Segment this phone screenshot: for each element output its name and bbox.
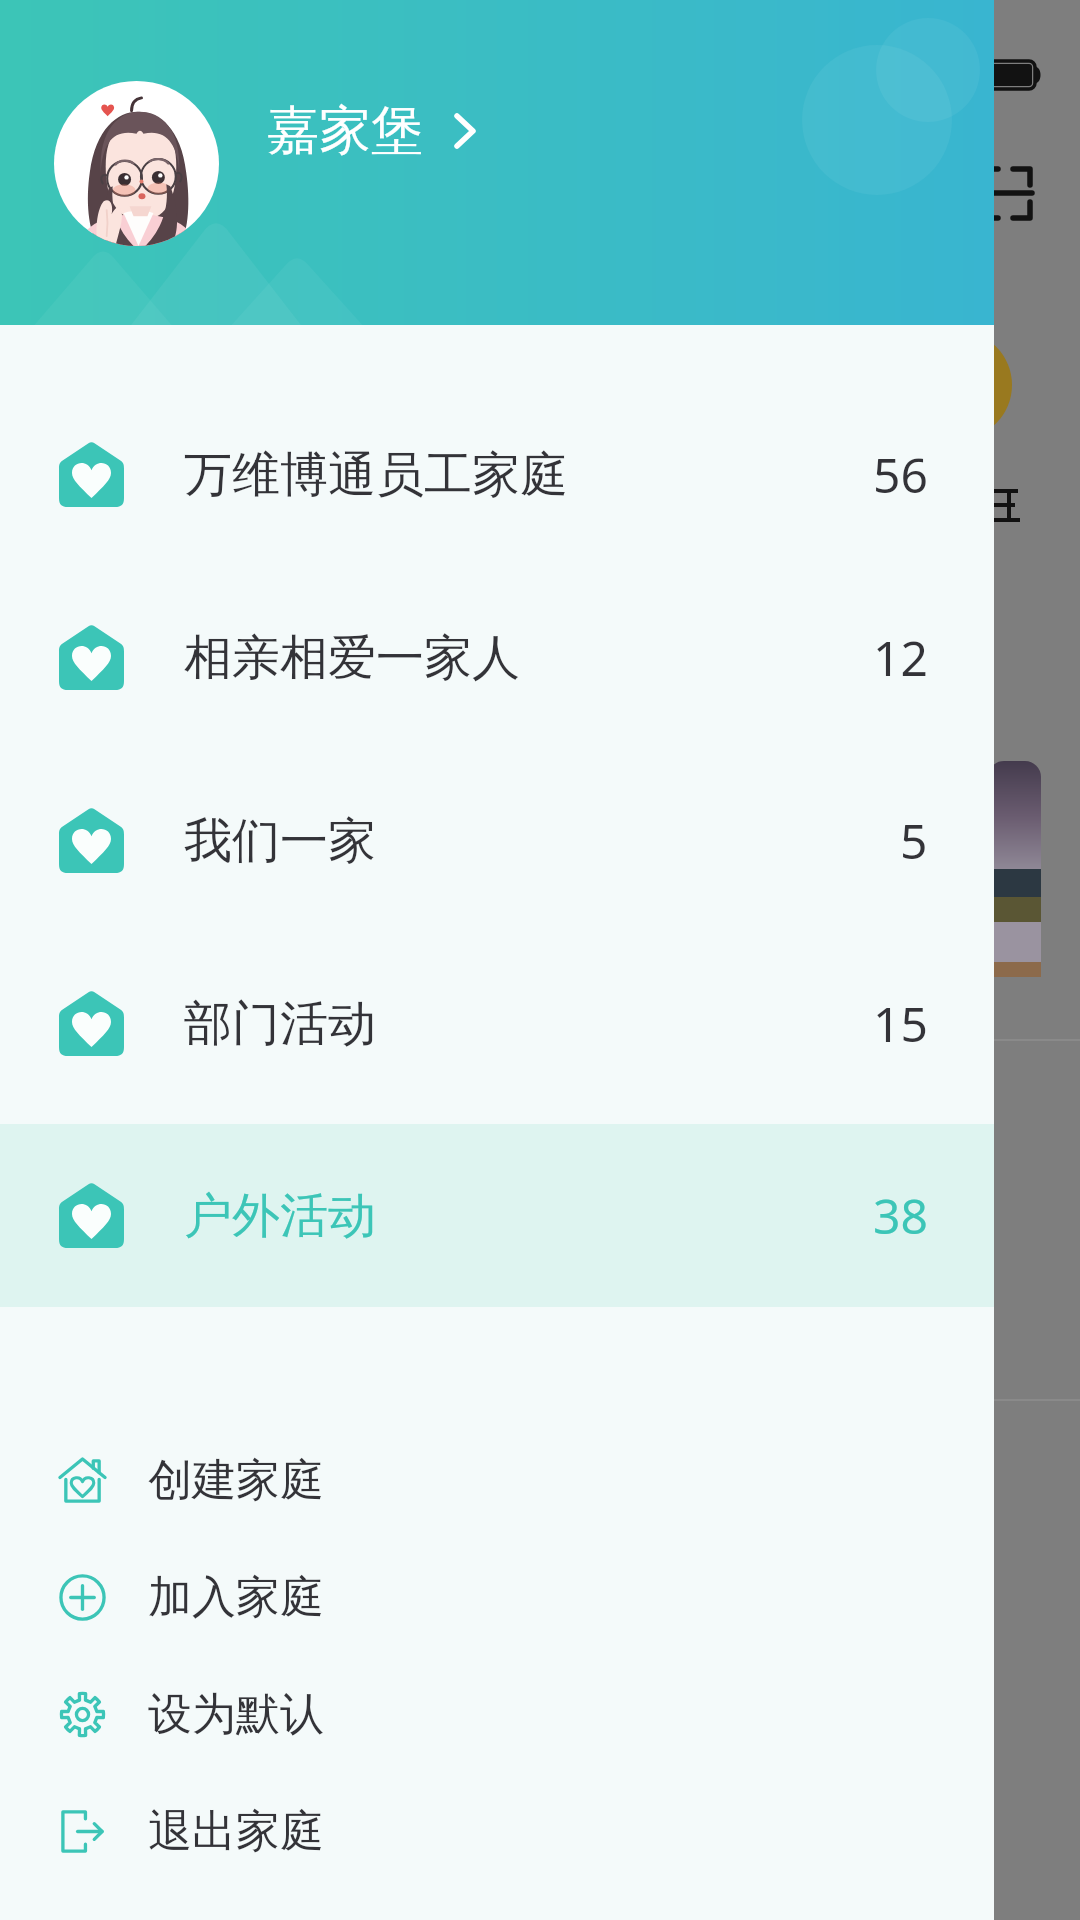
button[interactable]: Close navigation drawer (0, 0, 1080, 1920)
button[interactable]: Join family (0, 1539, 994, 1656)
button[interactable]: 万维博通员工家庭 (0, 383, 994, 566)
staticText: 相亲相爱一家人 (184, 628, 520, 688)
staticText: 万维博通员工家庭 (184, 445, 568, 505)
staticText: 15 (873, 991, 928, 1056)
staticText: 5 (900, 808, 928, 873)
button[interactable]: Set as default (0, 1656, 994, 1773)
staticText: 户外活动 (184, 1186, 376, 1246)
button[interactable]: Leave family (0, 1773, 994, 1890)
staticText: 56 (873, 442, 928, 507)
staticText: 加入家庭 (148, 1570, 324, 1625)
button[interactable]: 嘉家堡 (267, 98, 476, 164)
staticText: 退出家庭 (148, 1804, 324, 1859)
other: Leave family (58, 1807, 107, 1856)
staticText: 创建家庭 (148, 1453, 324, 1508)
other: Create family (58, 1456, 107, 1505)
other: Set as default (58, 1690, 107, 1739)
other: Join family (58, 1573, 107, 1622)
button[interactable]: 部门活动 (0, 932, 994, 1115)
button[interactable]: Create family (0, 1422, 994, 1539)
staticText: 38 (873, 1183, 928, 1248)
staticText: 部门活动 (184, 994, 376, 1054)
button[interactable]: 相亲相爱一家人 (0, 566, 994, 749)
staticText: 设为默认 (148, 1687, 324, 1742)
button[interactable]: 户外活动 (0, 1124, 994, 1307)
button[interactable]: 我们一家 (0, 749, 994, 932)
staticText: 嘉家堡 (267, 98, 423, 164)
staticText: 我们一家 (184, 811, 376, 871)
button[interactable] (54, 81, 219, 246)
staticText: 12 (873, 625, 928, 690)
